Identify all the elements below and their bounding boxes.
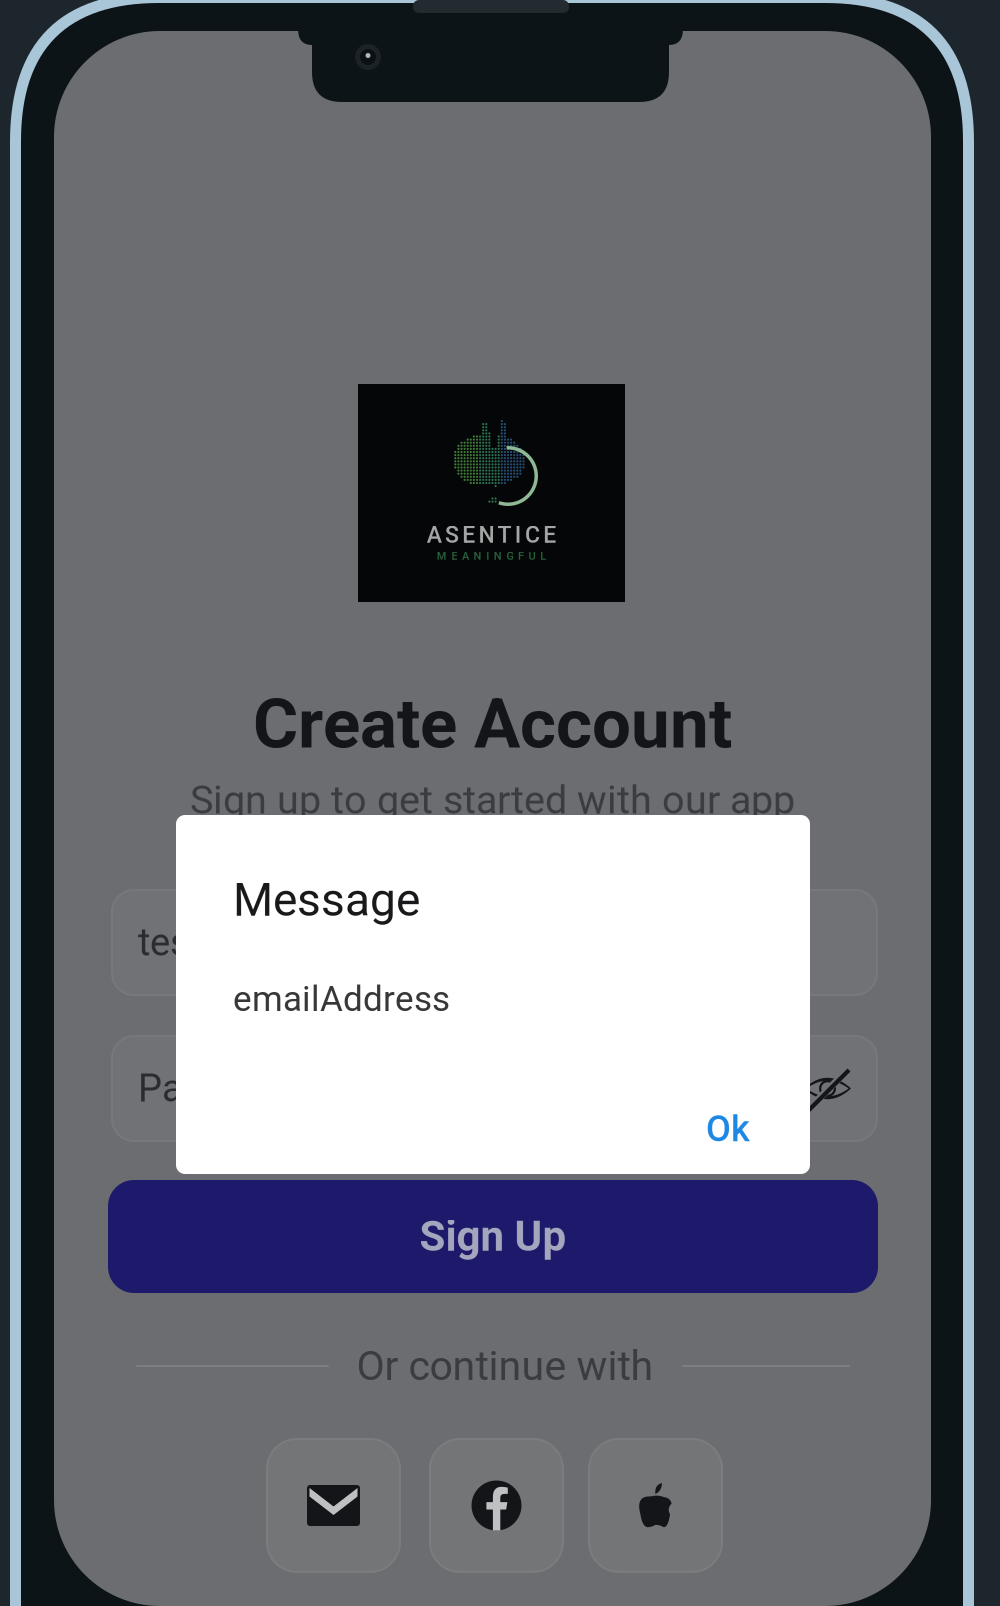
staticText: Ok	[706, 1108, 750, 1150]
button[interactable]: Password	[112, 1036, 877, 1141]
button[interactable]: Continue with Facebook	[430, 1439, 563, 1572]
staticText: A	[427, 521, 442, 548]
staticText: N	[474, 550, 482, 562]
staticText: Or continue with	[356, 1342, 653, 1390]
staticText: S	[445, 521, 459, 548]
button[interactable]: Show password	[804, 1069, 851, 1107]
staticText: N	[478, 521, 494, 548]
staticText: G	[506, 550, 513, 562]
staticText: I	[486, 550, 489, 562]
button[interactable]: Continue with Email	[267, 1439, 400, 1572]
button[interactable]: Continue with Apple	[589, 1439, 722, 1572]
staticText: Create Account	[253, 684, 732, 764]
staticText: emailAddress	[233, 978, 450, 1019]
staticText: C	[525, 521, 540, 548]
button[interactable]: test@gmail.com	[112, 890, 877, 995]
staticText: U	[529, 550, 536, 562]
staticText: Sign up to get started with our app	[190, 777, 795, 823]
button[interactable]: Ok	[668, 1091, 788, 1167]
staticText: E	[451, 550, 457, 562]
staticText: E	[543, 521, 556, 548]
staticText: I	[515, 521, 522, 548]
staticText: N	[494, 550, 502, 562]
button[interactable]: Sign Up	[108, 1180, 878, 1293]
staticText: T	[498, 521, 512, 548]
staticText: A	[462, 550, 469, 562]
staticText: E	[462, 521, 475, 548]
staticText: Sign Up	[419, 1212, 566, 1261]
staticText: Password	[138, 1066, 308, 1111]
staticText: L	[540, 550, 546, 562]
staticText: Message	[233, 873, 420, 927]
staticText: M	[437, 550, 447, 562]
staticText: F	[518, 550, 524, 562]
staticText: test@gmail.com	[138, 920, 414, 965]
